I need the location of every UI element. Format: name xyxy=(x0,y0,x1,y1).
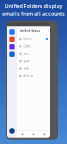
staticText: Archive xyxy=(23,74,33,78)
button[interactable]: Archive xyxy=(17,72,50,80)
button[interactable]: Trash xyxy=(17,65,50,72)
button[interactable]: Spam xyxy=(17,57,50,65)
button[interactable]: Yahoo account xyxy=(9,44,15,49)
button[interactable]: Outlook account xyxy=(9,51,15,57)
button[interactable]: Sent xyxy=(17,50,50,57)
button[interactable]: Inbox xyxy=(17,35,50,43)
button[interactable]: Drafts xyxy=(17,43,50,50)
staticText: Spam xyxy=(23,59,29,63)
button[interactable]: Gmail account xyxy=(9,37,15,42)
button[interactable]: Compose xyxy=(17,131,28,138)
staticText: Unified Folders display xyxy=(4,2,62,10)
button[interactable]: Search xyxy=(28,131,39,138)
button[interactable]: Profile xyxy=(9,128,15,134)
staticText: Inbox xyxy=(23,37,31,41)
button[interactable]: Mail account xyxy=(9,29,15,35)
staticText: Sent xyxy=(23,52,29,55)
staticText: Drafts xyxy=(23,45,30,48)
staticText: Unified Inbox xyxy=(19,29,39,33)
staticText: emails from all accounts xyxy=(2,10,65,17)
staticText: Trash xyxy=(23,67,29,70)
button[interactable]: More xyxy=(39,131,50,138)
